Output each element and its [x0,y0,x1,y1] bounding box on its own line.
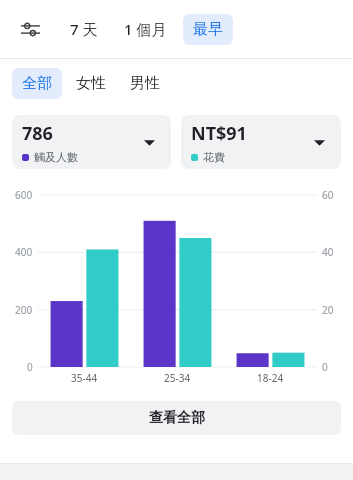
button[interactable]: Filter settings [16,15,44,43]
staticText: 最早 [193,20,223,39]
staticText: NT$91 [191,121,247,146]
staticText: 觸及人數 [34,150,78,164]
staticText: 40 [322,245,334,259]
staticText: 600 [15,188,33,202]
staticText: 1 個月 [124,19,167,39]
staticText: 20 [322,303,334,317]
button[interactable]: 786 [12,115,171,169]
button[interactable]: 最早 [183,14,233,45]
button[interactable]: 全部 [12,68,62,99]
staticText: 35-44 [71,371,98,385]
staticText: 女性 [76,74,106,93]
button[interactable]: 女性 [66,68,116,99]
staticText: 200 [15,303,33,317]
staticText: 7 天 [70,19,98,39]
staticText: 花費 [203,150,225,164]
staticText: 60 [322,188,334,202]
staticText: 查看全部 [149,409,205,427]
staticText: 25-34 [164,371,191,385]
button[interactable]: NT$91 [181,115,341,169]
staticText: 0 [322,360,328,374]
button[interactable]: 1 個月 [114,13,177,45]
staticText: 0 [27,360,33,374]
button[interactable]: 7 天 [60,13,108,45]
staticText: 400 [15,245,33,259]
staticText: 786 [22,121,53,146]
button[interactable]: 查看全部 [12,401,341,435]
staticText: 男性 [130,74,160,93]
staticText: 全部 [22,74,52,93]
button[interactable]: 男性 [120,68,170,99]
staticText: 18-24 [257,371,284,385]
